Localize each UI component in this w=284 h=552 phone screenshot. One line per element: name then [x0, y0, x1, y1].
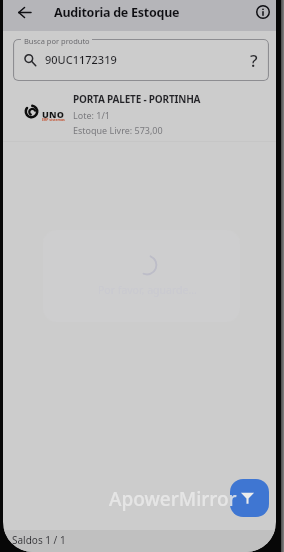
button[interactable] — [13, 39, 269, 81]
button[interactable]: Filtrar — [230, 479, 269, 517]
staticText: ApowerMirror — [109, 486, 237, 512]
button[interactable]: Informações — [250, 0, 276, 24]
staticText: Estoque Livre: 573,00 — [73, 124, 163, 136]
staticText: Lote: 1/1 — [73, 109, 110, 121]
staticText: 90UC1172319 — [45, 52, 117, 67]
staticText: ? — [250, 49, 258, 72]
staticText: ERP sistemas — [42, 117, 65, 122]
staticText: PORTA PALETE - PORTINHA — [73, 92, 201, 106]
button[interactable]: UNO — [3, 81, 276, 141]
staticText: Saldos 1 / 1 — [12, 533, 66, 547]
staticText: Busca por produto — [24, 36, 90, 46]
staticText: Auditoria de Estoque — [54, 4, 180, 21]
staticText: UNO — [42, 108, 65, 120]
button[interactable]: Voltar — [9, 0, 39, 25]
